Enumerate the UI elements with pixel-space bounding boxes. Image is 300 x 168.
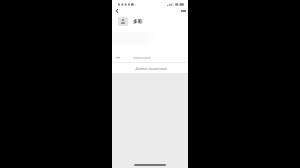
staticText: Добавить комментарий [135, 67, 167, 71]
button[interactable]: Back [113, 7, 120, 14]
button[interactable]: More options [180, 7, 187, 14]
button[interactable]: Добавить комментарий [112, 64, 188, 73]
staticText: комментарий [133, 56, 151, 60]
button[interactable]: комментарий [112, 53, 188, 62]
button[interactable]: 多彩 [112, 17, 188, 27]
staticText: 多彩 [133, 18, 143, 24]
